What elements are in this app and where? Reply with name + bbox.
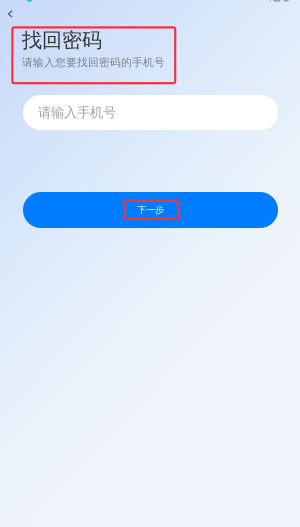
button[interactable]: Back (0, 2, 22, 26)
staticText: 找回密码 (22, 28, 102, 53)
staticText: 请输入您要找回密码的手机号 (22, 56, 165, 69)
button[interactable]: 下一步 (23, 192, 278, 228)
staticText: 下一步 (137, 204, 164, 216)
staticText: 请输入手机号 (38, 104, 116, 121)
